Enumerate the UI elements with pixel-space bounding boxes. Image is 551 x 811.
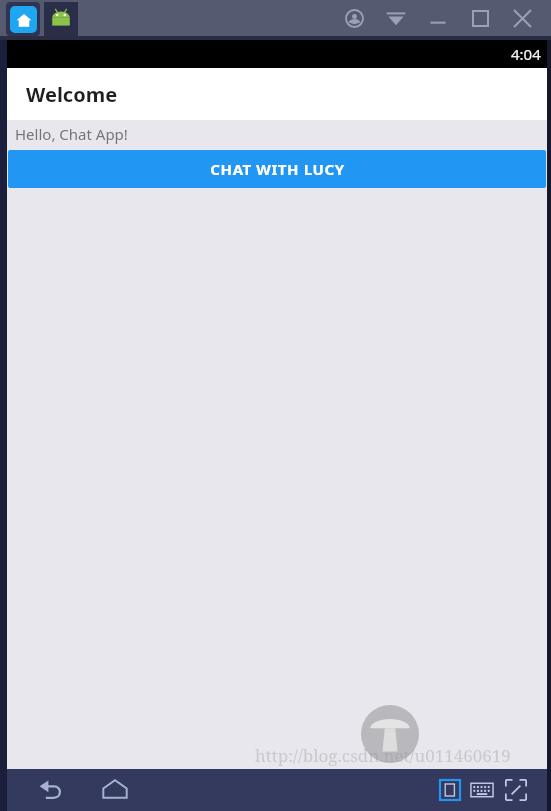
staticText: http://blog.csdn.net/u011460619 bbox=[255, 744, 511, 767]
staticText: CHAT WITH LUCY bbox=[210, 159, 345, 179]
staticText: Hello, Chat App! bbox=[15, 124, 128, 144]
button[interactable]: Rotate bbox=[439, 779, 461, 801]
button[interactable]: Home tab bbox=[6, 2, 40, 36]
button[interactable]: Close bbox=[507, 3, 537, 33]
button[interactable]: Account bbox=[339, 3, 369, 33]
button[interactable]: Fullscreen bbox=[503, 777, 529, 803]
button[interactable]: CHAT WITH LUCY bbox=[8, 150, 546, 188]
button[interactable]: Back bbox=[29, 769, 73, 811]
button[interactable]: Home bbox=[93, 769, 137, 811]
button[interactable]: Keyboard bbox=[469, 777, 495, 803]
button[interactable]: Dropdown bbox=[381, 3, 411, 33]
button[interactable]: Maximize bbox=[465, 3, 495, 33]
button[interactable]: Minimize bbox=[423, 3, 453, 33]
staticText: Welcome bbox=[26, 81, 118, 108]
button[interactable]: Android emulator tab bbox=[44, 2, 78, 36]
staticText: 4:04 bbox=[511, 44, 541, 64]
